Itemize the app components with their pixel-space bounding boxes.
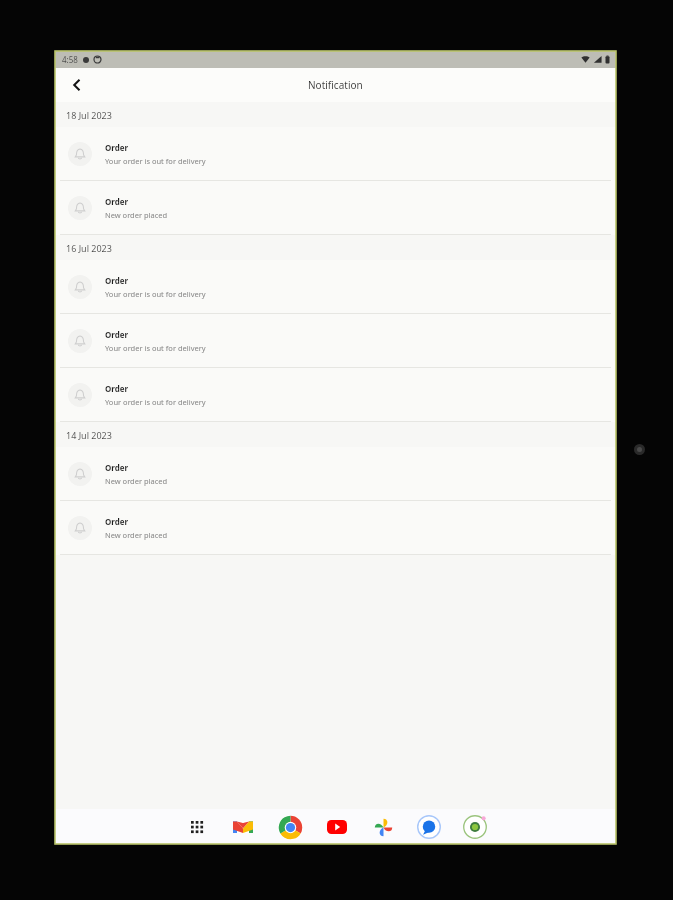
- button[interactable]: Back: [63, 71, 91, 99]
- staticText: New order placed: [105, 530, 168, 540]
- staticText: Your order is out for delivery: [105, 397, 206, 407]
- staticText: Order: [105, 329, 129, 340]
- button[interactable]: Order: [55, 260, 616, 314]
- staticText: 18 Jul 2023: [66, 109, 112, 121]
- button[interactable]: Order: [55, 447, 616, 501]
- button[interactable]: All apps: [184, 814, 210, 840]
- staticText: 14 Jul 2023: [66, 429, 112, 441]
- button[interactable]: Gmail: [230, 814, 256, 840]
- button[interactable]: Order: [55, 368, 616, 422]
- staticText: Your order is out for delivery: [105, 289, 206, 299]
- button[interactable]: Order: [55, 314, 616, 368]
- staticText: Notification: [308, 78, 363, 92]
- staticText: 16 Jul 2023: [66, 242, 112, 254]
- button[interactable]: Order: [55, 501, 616, 555]
- staticText: Order: [105, 196, 129, 207]
- staticText: Your order is out for delivery: [105, 343, 206, 353]
- staticText: Your order is out for delivery: [105, 156, 206, 166]
- button[interactable]: Google Photos: [370, 814, 396, 840]
- staticText: Order: [105, 516, 129, 527]
- button[interactable]: Messages: [416, 814, 442, 840]
- staticText: New order placed: [105, 476, 168, 486]
- staticText: 4:58: [62, 54, 78, 65]
- staticText: Order: [105, 383, 129, 394]
- staticText: Order: [105, 462, 129, 473]
- button[interactable]: Order: [55, 127, 616, 181]
- button[interactable]: Order: [55, 181, 616, 235]
- staticText: Order: [105, 142, 129, 153]
- button[interactable]: Recorder: [462, 814, 488, 840]
- staticText: New order placed: [105, 210, 168, 220]
- button[interactable]: Chrome: [276, 813, 304, 841]
- button[interactable]: YouTube: [324, 814, 350, 840]
- staticText: Order: [105, 275, 129, 286]
